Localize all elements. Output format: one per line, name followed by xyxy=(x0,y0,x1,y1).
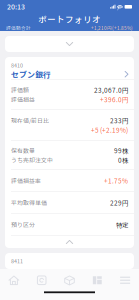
staticText: セブン銀行 xyxy=(11,68,51,80)
button[interactable]: 8410 xyxy=(5,57,134,79)
staticText: 8410 xyxy=(11,61,23,69)
staticText: 評価額 xyxy=(11,86,29,94)
button[interactable]: ホーム xyxy=(0,273,28,287)
staticText: 平均取得単価 xyxy=(11,198,47,207)
staticText: +5 (+2.19%) xyxy=(91,125,128,135)
staticText: 0株 xyxy=(118,155,128,165)
button[interactable]: マーケット xyxy=(83,273,111,287)
staticText: 預り区分 xyxy=(11,220,35,229)
staticText: +1.75% xyxy=(104,176,128,185)
staticText: 評価損益率 xyxy=(11,176,41,185)
staticText: 20:13 xyxy=(7,1,25,11)
staticText: ポートフォリオ xyxy=(38,13,101,25)
staticText: 保有数量 xyxy=(11,146,35,155)
staticText: +1,210円(+1.85%) xyxy=(91,25,133,31)
staticText: 99株 xyxy=(114,146,128,155)
staticText: 評価損益 xyxy=(11,95,35,104)
button[interactable]: 取引 xyxy=(28,273,56,287)
button[interactable]: サマリーを開く xyxy=(5,36,134,52)
staticText: 23,067.0円 xyxy=(94,85,128,95)
button[interactable]: メニュー xyxy=(111,273,139,287)
staticText: 特定 xyxy=(116,220,128,229)
staticText: +396.0円 xyxy=(100,95,128,104)
staticText: 229円 xyxy=(110,198,128,207)
button[interactable]: 折りたたむ xyxy=(5,236,134,248)
staticText: 評価額合計 xyxy=(6,25,31,31)
staticText: 233円 xyxy=(110,116,128,125)
staticText: 現在値/前日比 xyxy=(11,116,49,125)
staticText: うち売却注文中 xyxy=(11,156,53,164)
staticText: 8411 xyxy=(11,257,23,265)
button[interactable]: 商品 xyxy=(56,273,83,287)
